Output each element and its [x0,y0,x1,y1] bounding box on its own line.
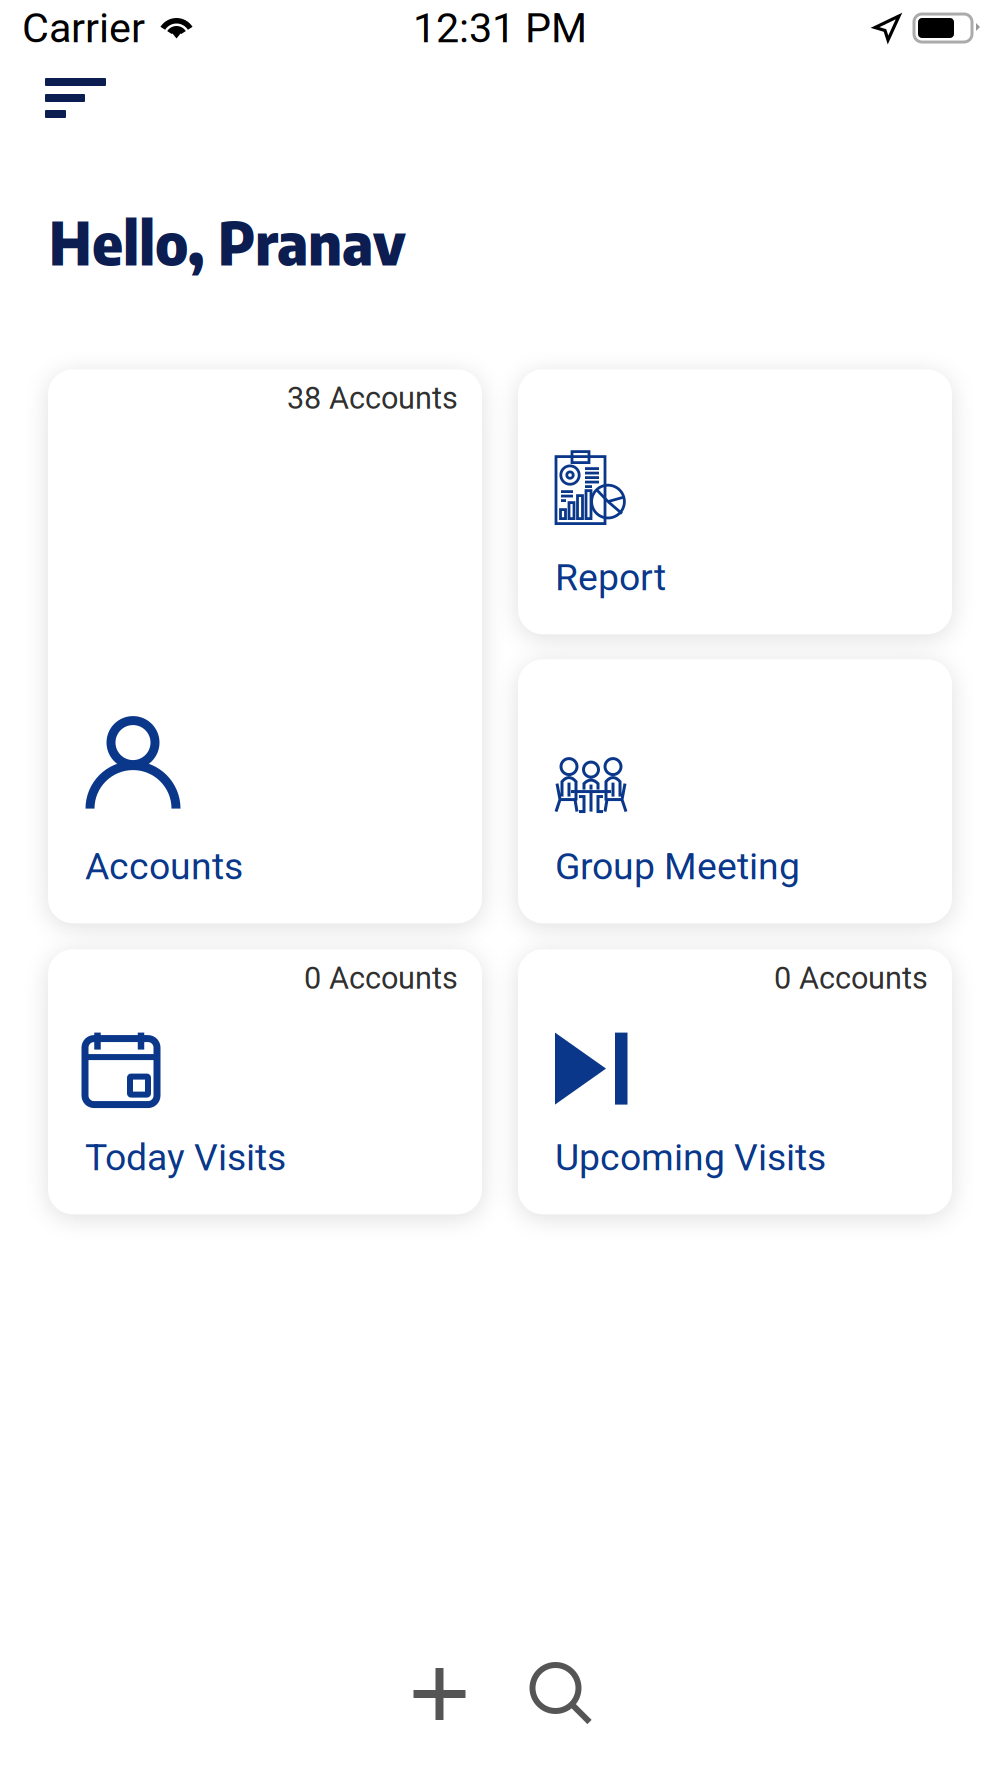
staticText: Accounts [85,845,243,888]
staticText: 38 Accounts [287,380,458,416]
staticText: Hello, Pranav [49,205,406,278]
button[interactable]: 0 Accounts [48,949,482,1214]
button[interactable]: Report [518,369,952,634]
button[interactable]: Add [409,1664,469,1724]
staticText: Upcoming Visits [555,1136,826,1179]
staticText: Carrier [22,4,145,52]
staticText: 0 Accounts [774,960,928,996]
button[interactable]: Menu [0,64,130,132]
button[interactable]: 0 Accounts [518,949,952,1214]
staticText: 0 Accounts [304,960,458,996]
staticText: 12:31 PM [413,4,587,52]
staticText: Group Meeting [555,845,800,888]
button[interactable]: Group Meeting [518,659,952,923]
button[interactable]: 38 Accounts [48,369,482,923]
button[interactable]: Search [530,1664,590,1724]
staticText: Report [555,556,666,599]
staticText: Today Visits [85,1136,286,1179]
